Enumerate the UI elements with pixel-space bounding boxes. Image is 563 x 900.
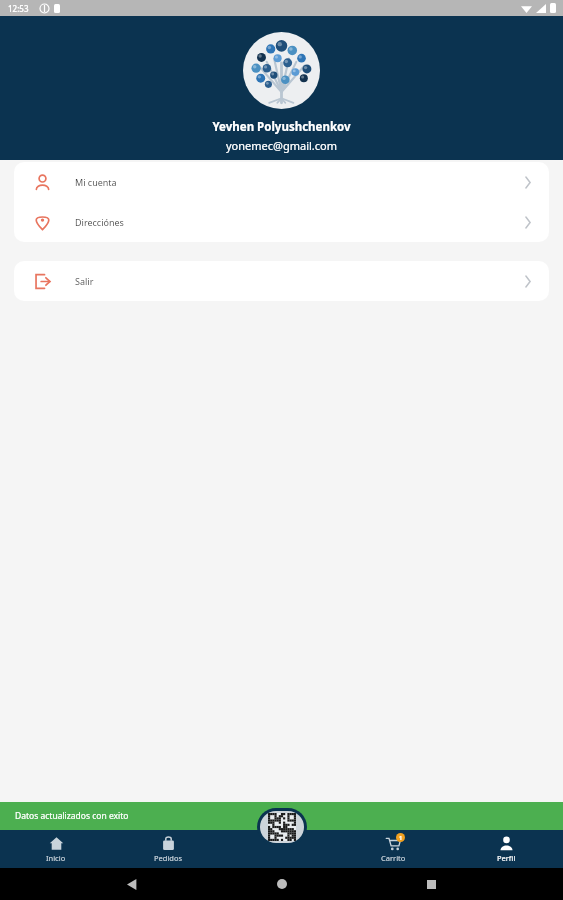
staticText: Pedidos [154,853,183,863]
button[interactable]: Inicio [265,868,299,900]
staticText: Carrito [381,853,406,863]
button[interactable]: Recientes [414,868,448,900]
button[interactable]: Perfil [450,830,563,868]
staticText: 12:53 [8,3,29,14]
staticText: 1 [399,834,403,841]
staticText: Inicio [46,853,66,863]
button[interactable]: Atrás [115,868,149,900]
staticText: Yevhen Polyushchenkov [212,119,351,135]
staticText: Perfil [497,853,516,863]
staticText: Salir [75,275,94,287]
staticText: Direcciónes [75,216,124,228]
button[interactable]: Mi cuenta [14,162,549,202]
staticText: Datos actualizados con exito [15,810,129,822]
button[interactable]: Escanear código QR [260,811,304,843]
button[interactable]: 1 [337,830,450,868]
button[interactable]: Pedidos [112,830,224,868]
button[interactable]: Inicio [0,830,112,868]
button[interactable]: Direcciónes [14,202,549,242]
button[interactable]: Salir [14,261,549,301]
staticText: Mi cuenta [75,176,117,188]
staticText: yonemec@gmail.com [226,138,337,153]
